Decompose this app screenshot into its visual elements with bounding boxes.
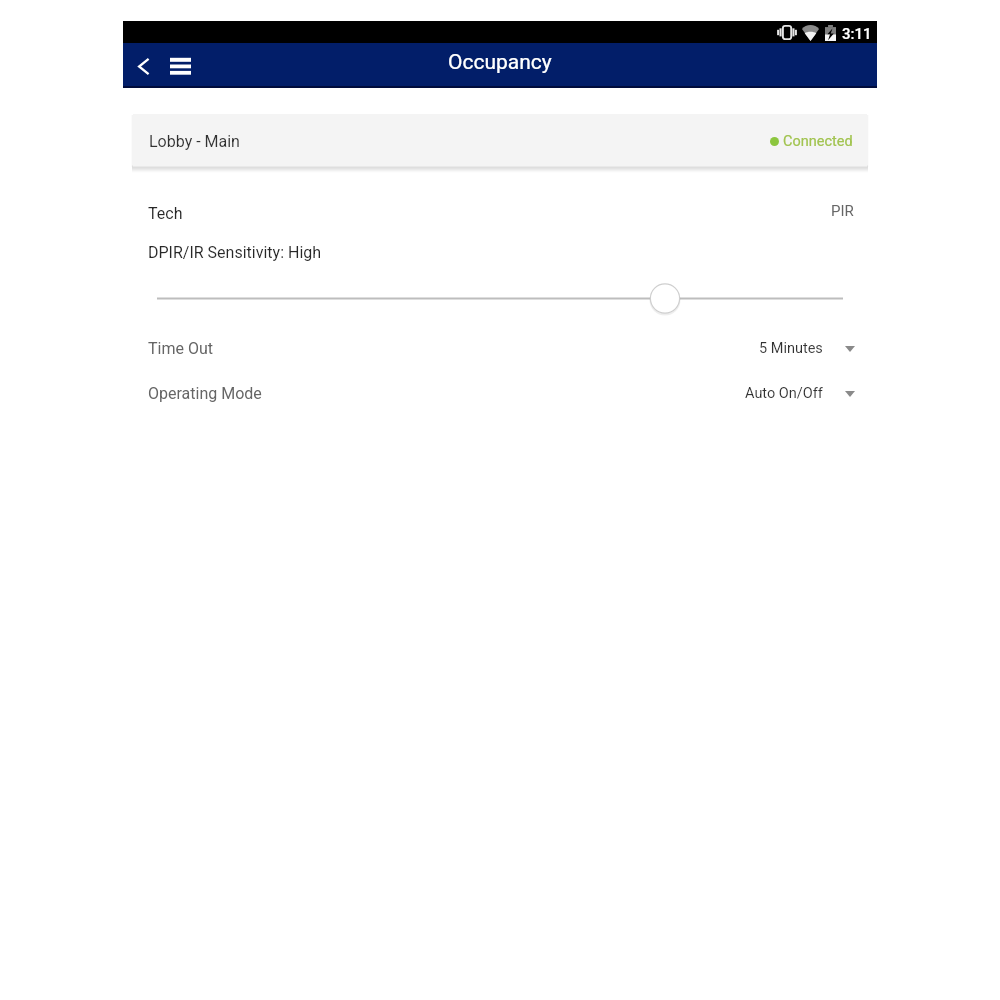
button[interactable]: Lobby - Main [133, 114, 867, 166]
staticText: Operating Mode [148, 384, 262, 403]
button[interactable]: Sensitivity slider [143, 283, 857, 315]
staticText: Tech [148, 204, 183, 223]
staticText: Lobby - Main [149, 132, 240, 151]
button[interactable]: Operating Mode [148, 380, 852, 406]
staticText: PIR [831, 202, 854, 220]
button[interactable]: Tech [148, 202, 852, 224]
button[interactable]: Time Out [148, 335, 852, 361]
staticText: 3:11 [842, 25, 872, 43]
staticText: Auto On/Off [745, 385, 823, 402]
staticText: Time Out [148, 339, 213, 358]
staticText: Occupancy [448, 50, 552, 75]
button[interactable]: Menu [163, 44, 201, 87]
staticText: DPIR/IR Sensitivity: High [148, 243, 322, 262]
staticText: 5 Minutes [759, 340, 823, 357]
button[interactable]: Back [124, 44, 162, 87]
staticText: Connected [783, 133, 853, 150]
